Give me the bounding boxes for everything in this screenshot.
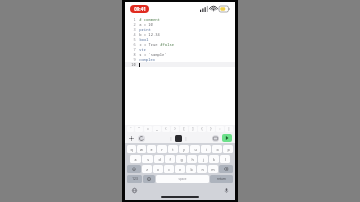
- button[interactable]: _: [153, 126, 161, 132]
- button[interactable]: e: [147, 145, 156, 153]
- staticText: g: [180, 157, 183, 162]
- button[interactable]: w: [137, 145, 146, 153]
- staticText: m: [211, 167, 215, 172]
- button[interactable]: =: [144, 126, 152, 132]
- staticText: (: [165, 127, 167, 131]
- button[interactable]: Dictation: [223, 187, 229, 193]
- button[interactable]: 9: [125, 57, 235, 62]
- button[interactable]: v: [175, 165, 185, 173]
- button[interactable]: Menu: [175, 135, 182, 142]
- button[interactable]: 10: [125, 62, 235, 67]
- staticText: ): [174, 127, 176, 131]
- staticText: u: [194, 147, 197, 152]
- button[interactable]: (: [162, 126, 170, 132]
- button[interactable]: space: [156, 175, 209, 183]
- staticText: e: [150, 147, 153, 152]
- button[interactable]: Emoji: [143, 175, 155, 183]
- staticText: b = 12.34: [139, 32, 160, 37]
- staticText: y: [183, 147, 185, 152]
- staticText: s: [147, 157, 149, 162]
- button[interactable]: [: [180, 126, 188, 132]
- button[interactable]: l: [220, 155, 230, 163]
- staticText: h: [191, 157, 194, 162]
- button[interactable]: ]: [189, 126, 197, 132]
- button[interactable]: b: [186, 165, 196, 173]
- button[interactable]: |: [225, 126, 233, 132]
- staticText: i: [206, 147, 207, 152]
- button[interactable]: {: [198, 126, 206, 132]
- button[interactable]: t: [168, 145, 178, 153]
- button[interactable]: o: [212, 145, 222, 153]
- button[interactable]: 1: [125, 17, 235, 22]
- button[interactable]: u: [190, 145, 200, 153]
- button[interactable]: Shift: [127, 165, 141, 173]
- staticText: 123: [132, 177, 138, 181]
- button[interactable]: x: [153, 165, 163, 173]
- staticText: b: [190, 167, 193, 172]
- button[interactable]: ): [171, 126, 179, 132]
- button[interactable]: 6: [125, 42, 235, 47]
- button[interactable]: z: [142, 165, 152, 173]
- staticText: t: [172, 147, 174, 152]
- staticText: 6: [133, 42, 136, 47]
- button[interactable]: f: [165, 155, 175, 163]
- button[interactable]: s: [142, 155, 153, 163]
- button[interactable]: y: [179, 145, 189, 153]
- button[interactable]: 2: [125, 22, 235, 27]
- button[interactable]: Run code: [222, 134, 232, 142]
- staticText: 1: [133, 17, 136, 22]
- staticText: 5: [133, 37, 136, 42]
- button[interactable]: i: [201, 145, 211, 153]
- button[interactable]: 123: [127, 175, 142, 183]
- staticText: 3: [133, 27, 136, 32]
- button[interactable]: Hide keyboard: [212, 135, 219, 142]
- staticText: w: [140, 147, 143, 152]
- button[interactable]: a: [130, 155, 141, 163]
- staticText: a: [134, 157, 137, 162]
- button[interactable]: 8: [125, 52, 235, 57]
- button[interactable]: 5: [125, 37, 235, 42]
- button[interactable]: ': [127, 126, 134, 132]
- button[interactable]: j: [198, 155, 208, 163]
- staticText: q: [130, 147, 133, 152]
- staticText: v: [179, 167, 181, 172]
- button[interactable]: Recording indicator: [130, 5, 149, 13]
- button[interactable]: 3: [125, 27, 235, 32]
- staticText: r: [161, 147, 163, 152]
- staticText: |: [170, 136, 172, 141]
- staticText: _: [156, 127, 158, 131]
- staticText: |: [228, 127, 230, 131]
- staticText: 4: [133, 32, 136, 37]
- staticText: d: [158, 157, 161, 162]
- button[interactable]: g: [176, 155, 186, 163]
- staticText: 7: [133, 47, 136, 52]
- staticText: s = 'sample': [139, 52, 167, 57]
- button[interactable]: 7: [125, 47, 235, 52]
- button[interactable]: k: [209, 155, 219, 163]
- button[interactable]: ": [135, 126, 143, 132]
- staticText: #false: [158, 42, 174, 47]
- button[interactable]: Delete: [219, 165, 233, 173]
- staticText: n: [201, 167, 204, 172]
- button[interactable]: Undo: [138, 135, 145, 142]
- button[interactable]: return: [210, 175, 233, 183]
- button[interactable]: q: [127, 145, 136, 153]
- staticText: bool: [139, 37, 149, 42]
- button[interactable]: Change keyboard language: [131, 187, 137, 193]
- button[interactable]: Move cursor: [128, 135, 135, 142]
- staticText: 09:41: [134, 6, 146, 12]
- button[interactable]: m: [208, 165, 218, 173]
- button[interactable]: d: [154, 155, 164, 163]
- staticText: complex: [139, 57, 155, 62]
- staticText: print: [139, 27, 151, 32]
- button[interactable]: 4: [125, 32, 235, 37]
- button[interactable]: r: [157, 145, 167, 153]
- button[interactable]: n: [197, 165, 207, 173]
- staticText: return: [217, 177, 226, 181]
- button[interactable]: c: [164, 165, 174, 173]
- button[interactable]: p: [223, 145, 233, 153]
- button[interactable]: }: [207, 126, 215, 132]
- button[interactable]: h: [187, 155, 197, 163]
- staticText: [: [183, 127, 185, 131]
